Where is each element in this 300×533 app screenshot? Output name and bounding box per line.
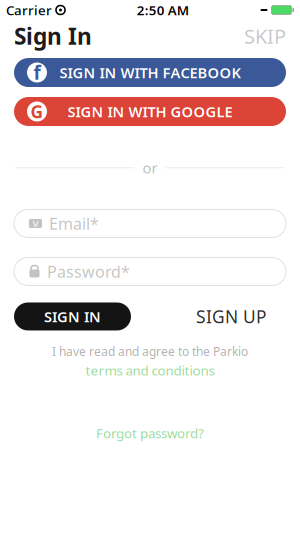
button[interactable]: SKIP [244,23,286,49]
staticText: SIGN IN WITH GOOGLE [67,102,232,121]
staticText: 2:50 AM [137,1,189,19]
staticText: I have read and agree to the Parkio [52,343,248,359]
button[interactable]: SIGN IN [14,302,131,330]
staticText: Carrier [6,1,52,19]
staticText: Password* [47,261,130,282]
staticText: Email* [49,213,99,234]
staticText: SIGN IN [44,307,101,326]
staticText: SKIP [244,23,286,49]
staticText: Sign In [14,21,92,51]
staticText: SIGN IN WITH FACEBOOK [59,63,240,82]
button[interactable]: Forgot password? [0,424,300,442]
staticText: f [33,60,40,85]
staticText: Forgot password? [96,424,204,442]
staticText: SIGN UP [196,305,266,328]
staticText: \/ [32,218,38,229]
button[interactable]: SIGN IN WITH GOOGLE [14,97,286,126]
staticText: terms and conditions [85,361,214,379]
button[interactable]: SIGN IN WITH FACEBOOK [14,58,286,87]
button[interactable]: SIGN UP [176,302,286,330]
button[interactable]: terms and conditions [85,361,214,379]
staticText: or [142,158,157,177]
staticText: G [30,100,43,123]
